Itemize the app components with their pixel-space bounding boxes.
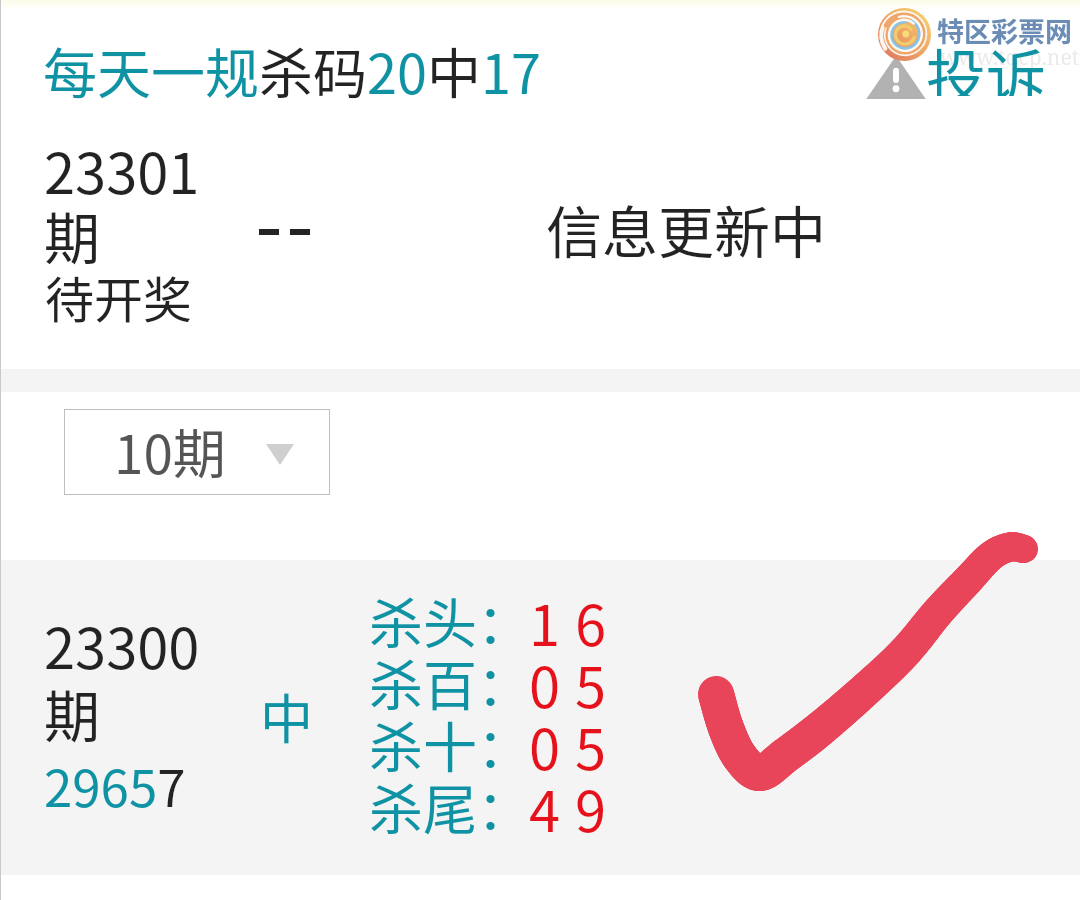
staticText: 杀十： bbox=[369, 705, 531, 783]
staticText: 每天一规杀码20中17 bbox=[43, 31, 541, 109]
staticText: 特区彩票网 bbox=[937, 11, 1072, 50]
staticText: 6 bbox=[575, 581, 607, 662]
staticText: 投诉 bbox=[926, 30, 1046, 96]
staticText: 5 bbox=[575, 705, 607, 786]
other: Expand bbox=[266, 444, 294, 465]
staticText: 0 bbox=[529, 705, 561, 786]
button[interactable]: 10期 bbox=[64, 409, 330, 495]
staticText: 5 bbox=[575, 643, 607, 724]
staticText: 23300 bbox=[44, 604, 200, 685]
staticText: 杀尾： bbox=[369, 767, 531, 845]
staticText: 1 bbox=[529, 581, 561, 662]
staticText: 期 bbox=[44, 194, 100, 275]
staticText: 4 bbox=[529, 767, 561, 848]
staticText: 杀头： bbox=[369, 581, 531, 659]
staticText: 待开奖 bbox=[45, 261, 193, 332]
staticText: 23301 bbox=[44, 129, 200, 210]
staticText: 中 bbox=[260, 678, 313, 755]
button[interactable]: 投诉 bbox=[926, 30, 1050, 96]
button[interactable] bbox=[0, 110, 1080, 369]
staticText: 信息更新中 bbox=[546, 188, 826, 269]
staticText: www.tqcp.net bbox=[940, 43, 1080, 72]
staticText: 9 bbox=[575, 767, 607, 848]
staticText: 10期 bbox=[114, 413, 226, 490]
staticText: 期 bbox=[44, 672, 100, 753]
staticText: 0 bbox=[529, 643, 561, 724]
staticText: 杀百： bbox=[369, 643, 531, 721]
staticText: 29657 bbox=[44, 748, 186, 822]
button[interactable] bbox=[0, 560, 1080, 875]
